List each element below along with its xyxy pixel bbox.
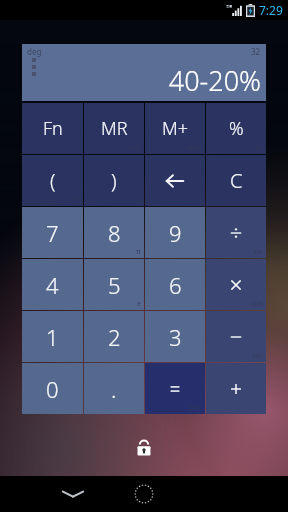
button[interactable]: 8 [84, 207, 144, 258]
staticText: 8 [108, 218, 121, 248]
staticText: 7:29 [259, 2, 283, 18]
button[interactable]: 6 [145, 259, 205, 310]
button[interactable]: 1 [22, 311, 83, 362]
button[interactable]: Backspace [145, 155, 205, 206]
button[interactable]: Locked [134, 438, 154, 458]
button[interactable]: Multiply [206, 259, 266, 310]
button[interactable]: 0 [22, 363, 83, 414]
staticText: Fn [43, 116, 63, 141]
staticText: cos [252, 299, 263, 309]
staticText: C [230, 167, 243, 194]
button[interactable]: Divide [206, 207, 266, 258]
staticText: M+ [162, 116, 188, 141]
staticText: 4 [46, 270, 59, 300]
staticText: e [137, 299, 141, 309]
button[interactable]: 3 [145, 311, 205, 362]
button[interactable]: Home [123, 476, 165, 512]
button[interactable]: . [84, 363, 144, 414]
staticText: MR [101, 116, 128, 141]
staticText: 40-20% [168, 62, 261, 99]
staticText: 9 [169, 218, 182, 248]
staticText: 6 [169, 270, 182, 300]
staticText: 32 [251, 46, 261, 57]
staticText: 7 [46, 218, 59, 248]
button[interactable]: Back [52, 476, 94, 512]
staticText: 5 [108, 270, 121, 300]
button[interactable]: 5 [84, 259, 144, 310]
staticText: tan [252, 351, 263, 361]
staticText: sin [253, 247, 263, 257]
staticText: 000 [189, 403, 202, 413]
button[interactable]: Fn [22, 103, 83, 154]
button[interactable]: 9 [145, 207, 205, 258]
staticText: 2 [108, 322, 121, 352]
button[interactable]: MR [84, 103, 144, 154]
button[interactable]: % [206, 103, 266, 154]
button[interactable]: Minus [206, 311, 266, 362]
staticText: π [136, 247, 141, 257]
staticText: % [229, 116, 244, 141]
staticText: 3 [169, 322, 182, 352]
button[interactable]: C [206, 155, 266, 206]
staticText: 1 [46, 322, 59, 352]
staticText: ( [50, 167, 56, 194]
staticText: 0 [46, 374, 59, 404]
button[interactable]: 4 [22, 259, 83, 310]
button[interactable]: ( [22, 155, 83, 206]
button[interactable]: M+ [145, 103, 205, 154]
staticText: . [111, 374, 117, 404]
other: More options [32, 58, 36, 76]
button[interactable]: Plus [206, 363, 266, 414]
button[interactable]: Equals [145, 363, 205, 414]
staticText: deg [27, 46, 42, 57]
staticText: ) [111, 167, 117, 194]
button[interactable]: 2 [84, 311, 144, 362]
button[interactable]: 7 [22, 207, 83, 258]
button[interactable]: ) [84, 155, 144, 206]
